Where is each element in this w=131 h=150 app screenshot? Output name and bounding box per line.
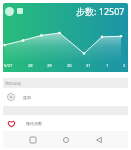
staticText: 28 — [28, 63, 33, 68]
staticText: 2 — [123, 63, 126, 68]
staticText: 29 — [47, 63, 52, 68]
staticText: 添加 — [23, 95, 31, 100]
staticText: 1 — [106, 63, 109, 68]
button[interactable]: Ranking — [17, 8, 23, 14]
button[interactable]: Back — [91, 132, 107, 148]
staticText: 步数: 12507 — [76, 5, 125, 17]
staticText: 我的运动 — [5, 81, 21, 86]
button[interactable]: Profile — [5, 7, 14, 16]
button[interactable]: Recent apps — [25, 132, 41, 148]
button[interactable]: 添加 — [3, 88, 128, 106]
staticText: 31 — [86, 63, 91, 68]
button[interactable]: 微信步数 — [3, 115, 128, 131]
staticText: 30 — [67, 63, 72, 68]
staticText: 微信步数 — [26, 121, 42, 126]
staticText: 5/27 — [4, 63, 13, 68]
button[interactable]: Home — [58, 132, 74, 148]
